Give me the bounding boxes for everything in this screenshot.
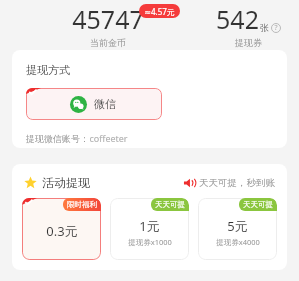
staticText: 限时福利 [67, 200, 97, 209]
staticText: coffeeter [89, 132, 128, 144]
staticText: 天天可提 [155, 200, 185, 209]
staticText: ? [274, 23, 278, 33]
button[interactable]: 微信 [26, 88, 162, 120]
staticText: 5元 [227, 217, 248, 235]
staticText: 天天可提 [243, 200, 273, 209]
other: 公告 [183, 177, 195, 189]
button[interactable]: 45747 [58, 2, 158, 48]
staticText: 活动提现 [42, 175, 90, 190]
staticText: ≈4.57元 [144, 6, 175, 17]
staticText: 当前金币 [90, 37, 126, 48]
staticText: 提现微信账号： [26, 133, 89, 144]
staticText: 0.3元 [46, 222, 78, 240]
button[interactable]: ≈4.57元 [139, 4, 180, 18]
staticText: 提现券 [235, 37, 262, 48]
staticText: 张 [260, 22, 269, 33]
staticText: 45747 [72, 2, 144, 36]
button[interactable]: 天天可提 [110, 198, 189, 260]
staticText: 提现方式 [26, 63, 70, 77]
staticText: 提现券x4000 [216, 237, 260, 247]
staticText: 542 [216, 2, 259, 36]
staticText: 天天可提，秒到账 [199, 177, 275, 189]
button[interactable]: 542 [198, 2, 298, 48]
staticText: 微信 [94, 97, 116, 111]
button[interactable]: 天天可提 [198, 198, 277, 260]
staticText: 1元 [139, 217, 160, 235]
button[interactable]: 帮助 [271, 23, 281, 33]
staticText: 提现券x1000 [128, 237, 172, 247]
button[interactable]: 限时福利 [22, 198, 101, 260]
